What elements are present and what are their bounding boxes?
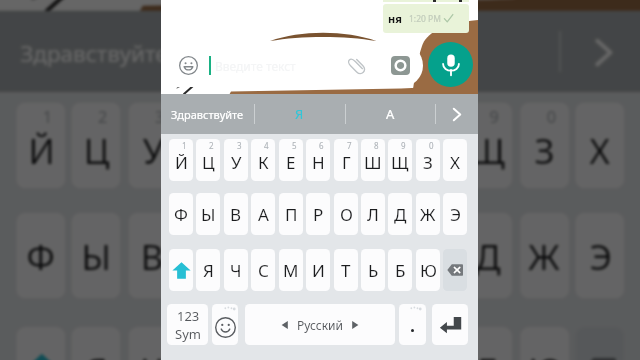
staticText: Здравствуйте (20, 37, 169, 68)
button[interactable]: 4 (184, 103, 233, 188)
button[interactable]: Т (334, 249, 358, 291)
button[interactable]: Х (443, 139, 467, 181)
button[interactable]: 6 (296, 103, 345, 188)
button[interactable]: Э (575, 213, 624, 298)
button[interactable]: 3 (128, 103, 177, 188)
button[interactable]: Л (361, 193, 385, 235)
button[interactable]: О (334, 193, 358, 235)
button[interactable]: 1 (16, 103, 65, 188)
staticText: 9 (401, 140, 406, 151)
button[interactable]: Т (353, 327, 402, 360)
button[interactable]: More suggestions (435, 94, 478, 134)
staticText: У (231, 151, 242, 174)
button[interactable]: Ж (416, 193, 440, 235)
button[interactable]: Ю (520, 327, 569, 360)
button[interactable]: Я (254, 94, 345, 134)
button[interactable]: П (279, 193, 303, 235)
button[interactable]: В (128, 213, 177, 298)
button[interactable]: Ь (408, 327, 457, 360)
button[interactable]: А (184, 213, 233, 298)
button[interactable]: Space (245, 304, 395, 345)
button[interactable]: Backspace (443, 249, 467, 291)
button[interactable]: Х (575, 103, 624, 188)
button[interactable]: Д (388, 193, 412, 235)
button[interactable]: Я (190, 11, 375, 92)
button[interactable]: Ы (71, 213, 120, 298)
button[interactable]: Ю (416, 249, 440, 291)
button[interactable]: Б (388, 249, 412, 291)
button[interactable]: Backspace (575, 327, 624, 360)
button[interactable]: Р (296, 213, 345, 298)
button[interactable]: Я (71, 327, 120, 360)
staticText: 4 (210, 105, 220, 127)
other: Camera (391, 56, 410, 75)
button[interactable]: 4 (251, 139, 275, 181)
staticText: Я (295, 105, 304, 123)
button[interactable]: Ф (16, 213, 65, 298)
button[interactable]: Symbols (167, 304, 208, 345)
button[interactable]: Ы (196, 193, 220, 235)
button[interactable]: 6 (306, 139, 330, 181)
button[interactable]: В (224, 193, 248, 235)
button[interactable]: Б (463, 327, 512, 360)
button[interactable]: 8 (408, 103, 457, 188)
button[interactable]: Record voice message (428, 42, 473, 87)
button[interactable]: 9 (463, 103, 512, 188)
button[interactable]: Ж (520, 213, 569, 298)
button[interactable]: 7 (353, 103, 402, 188)
button[interactable]: 5 (241, 103, 290, 188)
staticText: Д (394, 203, 407, 226)
button[interactable]: Здравствуйте (0, 11, 190, 92)
staticText: У (143, 127, 165, 174)
button[interactable]: 3 (224, 139, 248, 181)
button[interactable]: 5 (279, 139, 303, 181)
button[interactable]: Shift (169, 249, 193, 291)
button[interactable]: Л (408, 213, 457, 298)
button[interactable]: A (345, 94, 435, 134)
staticText: Ф (174, 203, 188, 226)
button[interactable]: Э (443, 193, 467, 235)
button[interactable]: Здравствуйте (161, 94, 254, 134)
staticText: Й (175, 151, 188, 174)
staticText: 2 (98, 105, 108, 127)
staticText: 5 (292, 140, 297, 151)
button[interactable]: 2 (71, 103, 120, 188)
button[interactable]: 1 (169, 139, 193, 181)
button[interactable]: Enter (432, 304, 468, 345)
button[interactable]: 2 (196, 139, 220, 181)
staticText: Е (255, 127, 275, 174)
staticText: К (198, 127, 220, 174)
button[interactable]: 7 (334, 139, 358, 181)
button[interactable]: И (296, 327, 345, 360)
staticText: Щ (469, 127, 506, 174)
button[interactable]: С (184, 327, 233, 360)
button[interactable]: М (241, 327, 290, 360)
button[interactable]: A (375, 11, 559, 92)
button[interactable]: О (353, 213, 402, 298)
button[interactable]: М (279, 249, 303, 291)
button[interactable]: Ч (128, 327, 177, 360)
staticText: Щ (391, 151, 409, 174)
button[interactable]: Ч (224, 249, 248, 291)
button[interactable]: Я (196, 249, 220, 291)
button[interactable]: Shift (16, 327, 65, 360)
button[interactable]: А (251, 193, 275, 235)
button[interactable]: Ф (169, 193, 193, 235)
button[interactable]: ня (383, 4, 469, 33)
button[interactable]: И (306, 249, 330, 291)
button[interactable]: More suggestions (559, 11, 640, 92)
button[interactable] (399, 304, 426, 345)
button[interactable]: 8 (361, 139, 385, 181)
button[interactable]: Emoji (161, 44, 423, 87)
button[interactable]: П (241, 213, 290, 298)
button[interactable]: Ь (361, 249, 385, 291)
button[interactable]: 0 (416, 139, 440, 181)
button[interactable]: Д (463, 213, 512, 298)
button[interactable]: Emoji (212, 304, 238, 345)
staticText: 3 (237, 140, 242, 151)
button[interactable]: Р (306, 193, 330, 235)
button[interactable]: С (251, 249, 275, 291)
button[interactable]: 0 (520, 103, 569, 188)
button[interactable]: 9 (388, 139, 412, 181)
